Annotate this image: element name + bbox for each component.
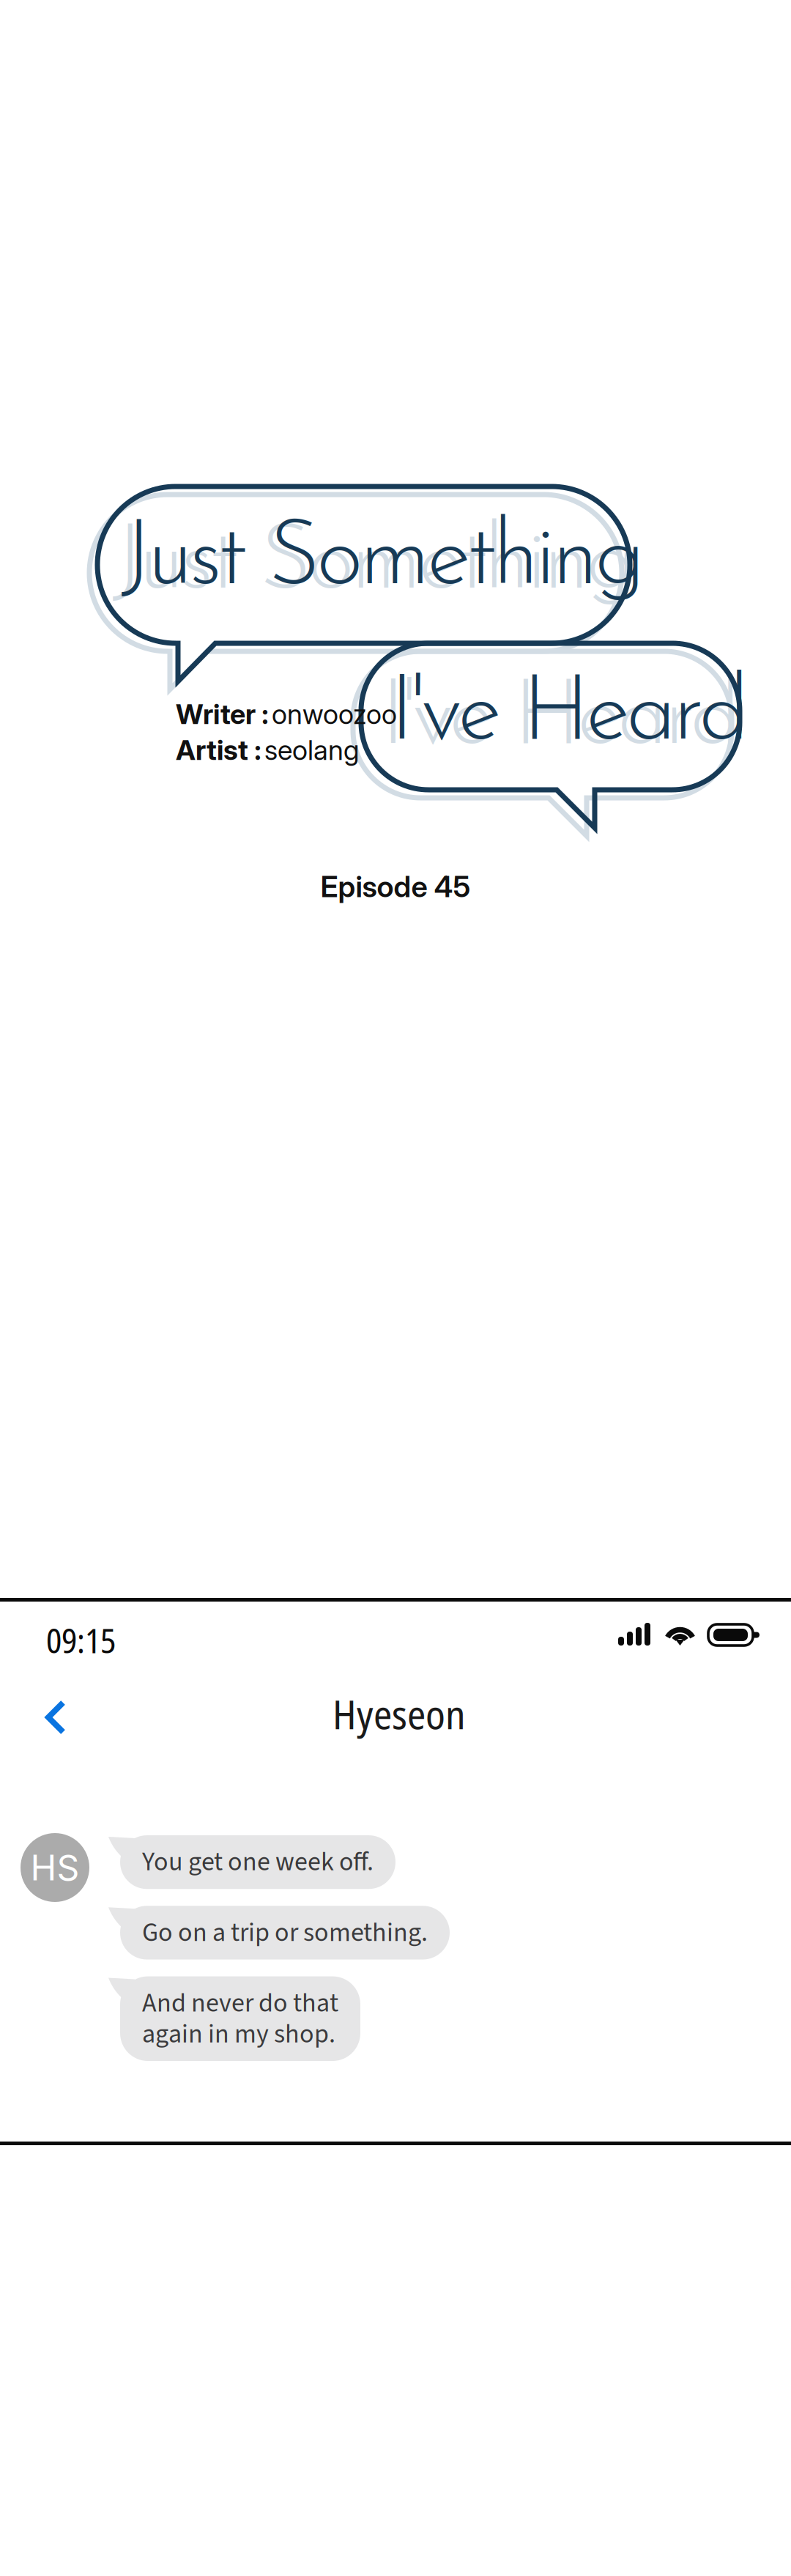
staticText: Go on a trip or something.: [142, 1914, 428, 1951]
staticText: Artist :: [176, 734, 261, 767]
staticText: 09:15: [46, 1618, 116, 1663]
staticText: You get one week off.: [142, 1843, 374, 1881]
staticText: HS: [30, 1846, 79, 1889]
staticText: I've Heard: [390, 671, 749, 761]
staticText: again in my shop.: [142, 2015, 335, 2053]
staticText: Just Something: [122, 516, 645, 606]
staticText: Writer :: [176, 697, 269, 731]
staticText: I've Heard: [381, 676, 740, 765]
staticText: And never do that: [142, 1984, 338, 2022]
staticText: seolang: [264, 734, 360, 767]
staticText: Just Something: [113, 520, 636, 610]
button[interactable]: Back: [0, 1673, 88, 1761]
staticText: Hyeseon: [333, 1686, 466, 1741]
staticText: onwoozoo: [272, 697, 397, 731]
staticText: Episode 45: [320, 869, 471, 904]
